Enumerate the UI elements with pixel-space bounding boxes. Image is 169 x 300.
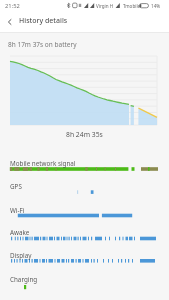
button[interactable]: GPS: [0, 180, 169, 196]
staticText: 14%: [151, 3, 161, 9]
button[interactable]: Back: [2, 12, 18, 32]
staticText: 8h 17m 37s on battery: [8, 40, 77, 49]
staticText: Awake: [10, 228, 30, 237]
button[interactable]: Mobile network signal: [0, 157, 169, 173]
staticText: Charging: [10, 275, 38, 284]
staticText: Display: [10, 251, 32, 260]
staticText: Mobile network signal: [10, 159, 76, 168]
button[interactable]: Display: [0, 249, 169, 265]
staticText: Tmobile: [123, 3, 141, 9]
staticText: 21:52: [5, 2, 20, 10]
button[interactable]: Awake: [0, 226, 169, 242]
staticText: 8h 24m 35s: [66, 130, 103, 139]
button[interactable]: Wi-Fi: [0, 204, 169, 220]
button[interactable]: Charging: [0, 273, 169, 289]
staticText: Wi-Fi: [10, 206, 25, 215]
staticText: History details: [19, 16, 68, 26]
staticText: Virgin H: [96, 3, 114, 9]
staticText: GPS: [10, 182, 22, 191]
